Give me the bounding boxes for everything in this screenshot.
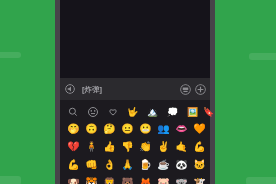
button[interactable]: 🐨 <box>172 174 190 184</box>
staticText: 😬 <box>139 123 152 135</box>
staticText: 👎 <box>121 141 134 153</box>
staticText: ✌️ <box>157 141 170 153</box>
staticText: 🍺 <box>139 159 152 171</box>
button[interactable]: Emoji category 4 <box>123 102 143 122</box>
staticText: 🤟 <box>127 107 139 118</box>
staticText: 🐶 <box>67 177 80 184</box>
button[interactable]: 🐻 <box>118 174 136 184</box>
staticText: 👌 <box>103 159 116 171</box>
button[interactable]: 🙏 <box>118 156 136 174</box>
button[interactable]: Emoji category 7 <box>183 102 203 122</box>
button[interactable]: 👊 <box>82 156 100 174</box>
button[interactable]: 🍺 <box>136 156 154 174</box>
button[interactable]: Emoji category 2 <box>83 102 103 122</box>
button[interactable]: Emoji category 1 <box>63 102 83 122</box>
staticText: 🐼 <box>175 159 188 171</box>
staticText: 🙏 <box>121 159 134 171</box>
staticText: 💔 <box>67 141 80 153</box>
staticText: 💪 <box>67 159 80 171</box>
staticText: 🧍 <box>85 141 98 153</box>
button[interactable]: 🤔 <box>100 120 118 138</box>
button[interactable]: 🧍 <box>82 138 100 156</box>
button[interactable]: 👍 <box>100 138 118 156</box>
staticText: 🙃 <box>85 123 98 135</box>
button[interactable]: 🦊 <box>136 174 154 184</box>
button[interactable]: 🐮 <box>190 174 208 184</box>
staticText: 👍 <box>103 141 116 153</box>
button[interactable]: 🐶 <box>64 174 82 184</box>
button[interactable]: 💔 <box>64 138 82 156</box>
staticText: 🔖 <box>203 107 213 118</box>
staticText: 🏔️ <box>147 107 159 118</box>
staticText: 💭 <box>167 107 179 118</box>
button[interactable]: 🧡 <box>190 120 208 138</box>
button[interactable]: ☕ <box>154 156 172 174</box>
button[interactable]: 💪 <box>64 156 82 174</box>
button[interactable]: 😐 <box>118 120 136 138</box>
staticText: 🤙 <box>175 141 188 153</box>
staticText: 🐻 <box>121 177 134 184</box>
button[interactable]: 👌 <box>100 156 118 174</box>
button[interactable]: Emoji category 8 <box>203 102 213 122</box>
button[interactable]: Emoji category 5 <box>143 102 163 122</box>
staticText: 🐯 <box>85 177 98 184</box>
staticText: 🧡 <box>193 123 206 135</box>
staticText: 🐱 <box>193 159 206 171</box>
button[interactable]: 👄 <box>172 120 190 138</box>
staticText: 🐷 <box>157 177 170 184</box>
staticText: 🦊 <box>139 177 152 184</box>
button[interactable]: Add <box>195 84 206 95</box>
button[interactable]: 🐷 <box>154 174 172 184</box>
button[interactable]: 🐼 <box>172 156 190 174</box>
staticText: 👏 <box>139 141 152 153</box>
button[interactable]: 🤙 <box>172 138 190 156</box>
staticText: 😐 <box>121 123 134 135</box>
button[interactable]: 👥 <box>154 120 172 138</box>
button[interactable]: ✌️ <box>154 138 172 156</box>
button[interactable]: 👎 <box>118 138 136 156</box>
staticText: 💪 <box>193 141 206 153</box>
staticText: [炸弹] <box>82 84 102 94</box>
button[interactable]: 🙃 <box>82 120 100 138</box>
staticText: 🤔 <box>103 123 116 135</box>
staticText: 🦁 <box>103 177 116 184</box>
staticText: ☕ <box>157 159 170 171</box>
button[interactable]: 🐯 <box>82 174 100 184</box>
button[interactable]: Keyboard <box>180 84 191 95</box>
staticText: 🖼️ <box>187 107 199 118</box>
button[interactable]: 👏 <box>136 138 154 156</box>
button[interactable]: 🐱 <box>190 156 208 174</box>
staticText: 👄 <box>175 123 188 135</box>
staticText: 🤭 <box>67 123 80 135</box>
button[interactable]: 😬 <box>136 120 154 138</box>
button[interactable]: 💪 <box>190 138 208 156</box>
staticText: 👊 <box>85 159 98 171</box>
button[interactable]: 🦁 <box>100 174 118 184</box>
button[interactable]: 🤭 <box>64 120 82 138</box>
button[interactable]: Sound <box>65 84 75 94</box>
staticText: 👥 <box>157 123 170 135</box>
staticText: 🐨 <box>175 177 188 184</box>
button[interactable]: Emoji category 6 <box>163 102 183 122</box>
staticText: 🐮 <box>193 177 206 184</box>
button[interactable]: Emoji category 3 <box>103 102 123 122</box>
